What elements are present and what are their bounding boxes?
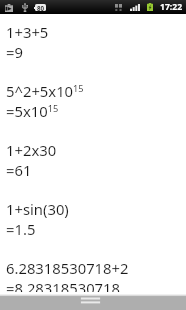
staticText: 1+2x30 bbox=[6, 140, 57, 160]
staticText: =1.5 bbox=[6, 219, 36, 239]
button[interactable]: Show keypad bbox=[0, 294, 186, 310]
staticText: 17:22 bbox=[160, 1, 183, 13]
staticText: 1+3+5 bbox=[6, 22, 49, 42]
button[interactable]: 6.28318530718+2 bbox=[0, 258, 186, 292]
button[interactable]: 1+sin(30) bbox=[0, 199, 186, 258]
button[interactable]: 5^2+5x1015 bbox=[0, 81, 186, 140]
staticText: =9 bbox=[6, 42, 23, 62]
button[interactable]: 1+3+5 bbox=[0, 22, 186, 81]
staticText: 5^2+5x1015 bbox=[6, 81, 84, 101]
staticText: =8.28318530718 bbox=[6, 278, 120, 292]
staticText: =5x1015 bbox=[6, 101, 59, 121]
button[interactable]: 1+2x30 bbox=[0, 140, 186, 199]
staticText: =61 bbox=[6, 160, 32, 180]
staticText: 80 bbox=[37, 4, 45, 11]
staticText: 6.28318530718+2 bbox=[6, 258, 129, 278]
staticText: 1+sin(30) bbox=[6, 199, 69, 219]
